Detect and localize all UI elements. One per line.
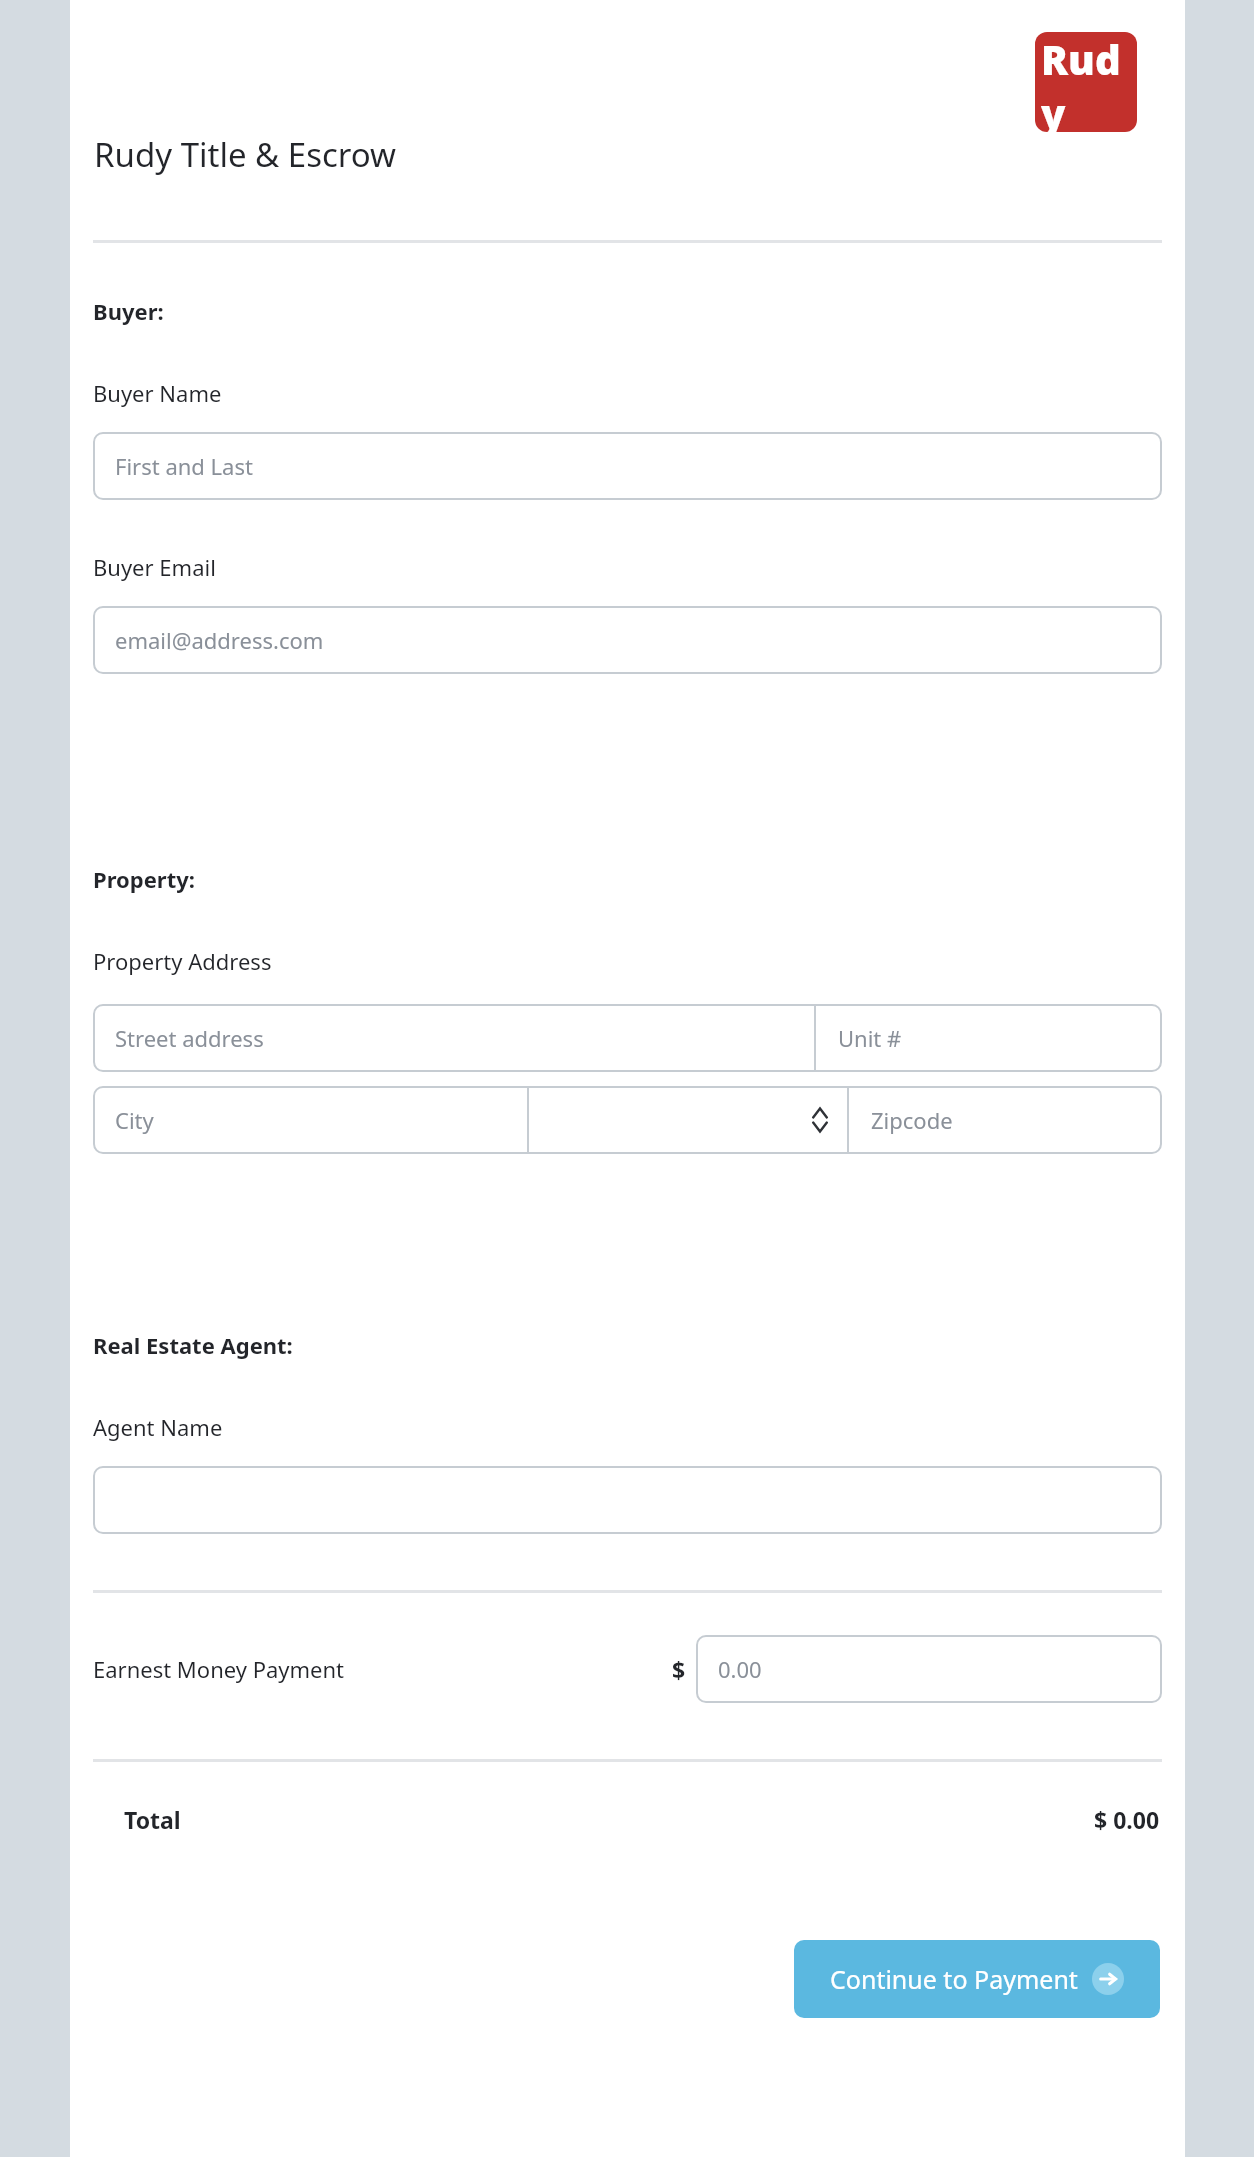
staticText: Rudy Title & Escrow [94, 132, 397, 177]
staticText: Property: [93, 864, 195, 894]
button[interactable]: Unit # [816, 1004, 1162, 1072]
staticText: Unit # [838, 1023, 902, 1053]
staticText: Street address [115, 1023, 264, 1053]
staticText: Agent Name [93, 1412, 223, 1442]
staticText: Zipcode [871, 1105, 953, 1135]
staticText: 0.00 [718, 1654, 762, 1684]
staticText: City [115, 1105, 154, 1135]
staticText: email@address.com [115, 625, 324, 655]
staticText: Buyer Name [93, 378, 222, 408]
staticText: $ [672, 1654, 686, 1685]
button[interactable]: Rudy Title & Escrow logo [1035, 32, 1137, 132]
staticText: Property Address [93, 946, 272, 976]
staticText: Total [124, 1804, 181, 1835]
button[interactable]: Continue to Payment [794, 1940, 1160, 2018]
button[interactable]: City [93, 1086, 527, 1154]
staticText: First and Last [115, 451, 253, 481]
button[interactable]: email@address.com [93, 606, 1162, 674]
staticText: Buyer Email [93, 552, 216, 582]
staticText: $ 0.00 [1094, 1804, 1160, 1835]
button[interactable]: First and Last [93, 432, 1162, 500]
staticText: Real Estate Agent: [93, 1330, 293, 1360]
button[interactable] [93, 1466, 1162, 1534]
button[interactable]: 0.00 [696, 1635, 1162, 1703]
staticText: Buyer: [93, 296, 164, 326]
button[interactable]: Zipcode [849, 1086, 1162, 1154]
button[interactable]: Street address [93, 1004, 814, 1072]
staticText: Continue to Payment [830, 1962, 1078, 1996]
staticText: Earnest Money Payment [93, 1654, 345, 1684]
staticText: Rudy [1041, 32, 1131, 132]
button[interactable]: Select state [529, 1086, 847, 1154]
